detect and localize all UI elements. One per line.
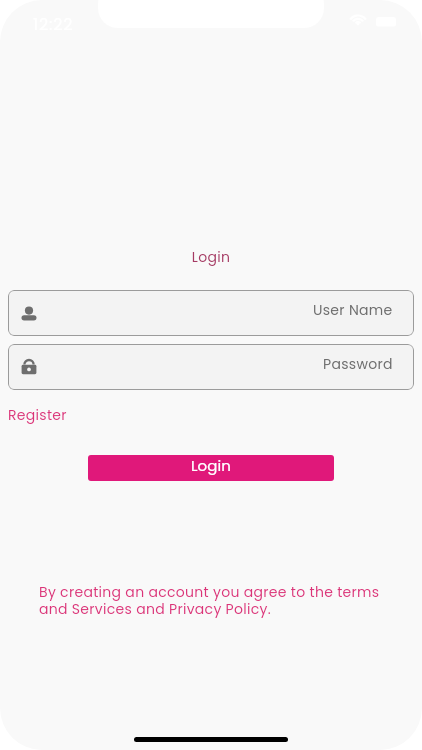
staticText: Login xyxy=(0,247,422,267)
staticText: Password xyxy=(323,354,393,374)
button[interactable]: Register xyxy=(8,405,67,425)
button[interactable]: Password xyxy=(8,344,414,390)
staticText: User Name xyxy=(313,300,393,320)
staticText: Login xyxy=(191,455,232,476)
button[interactable]: Login xyxy=(88,455,334,481)
staticText: By creating an account you agree to the … xyxy=(39,582,380,619)
button[interactable]: User Name xyxy=(8,290,414,336)
staticText: Register xyxy=(8,405,67,425)
